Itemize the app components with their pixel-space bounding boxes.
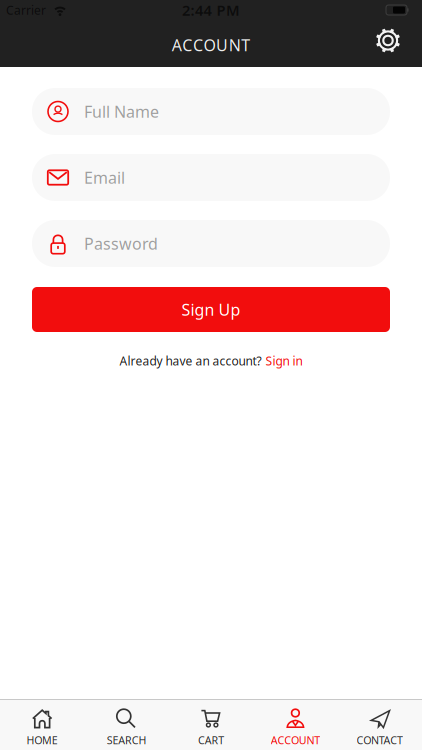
button[interactable]: Email: [32, 154, 390, 201]
button[interactable]: Password: [32, 220, 390, 267]
staticText: Carrier: [6, 2, 46, 18]
staticText: CART: [198, 733, 224, 747]
button[interactable]: CART: [169, 700, 253, 750]
staticText: Full Name: [84, 101, 159, 122]
staticText: ACCOUNT: [271, 733, 320, 747]
staticText: Sign Up: [181, 299, 240, 320]
button[interactable]: HOME: [0, 700, 84, 750]
button[interactable]: Settings: [375, 32, 401, 58]
staticText: Sign in: [265, 353, 302, 369]
button[interactable]: CONTACT: [338, 700, 422, 750]
button[interactable]: Sign in: [265, 353, 302, 369]
staticText: 2:44 PM: [182, 0, 240, 20]
staticText: Email: [84, 167, 125, 188]
button[interactable]: ACCOUNT: [253, 700, 338, 750]
staticText: Password: [84, 233, 158, 254]
staticText: CONTACT: [357, 733, 403, 747]
staticText: Already have an account?: [119, 353, 261, 369]
button[interactable]: SEARCH: [84, 700, 169, 750]
button[interactable]: Sign Up: [32, 287, 390, 332]
staticText: ACCOUNT: [172, 34, 250, 56]
staticText: HOME: [27, 733, 58, 747]
staticText: SEARCH: [107, 733, 146, 747]
button[interactable]: Full Name: [32, 88, 390, 135]
